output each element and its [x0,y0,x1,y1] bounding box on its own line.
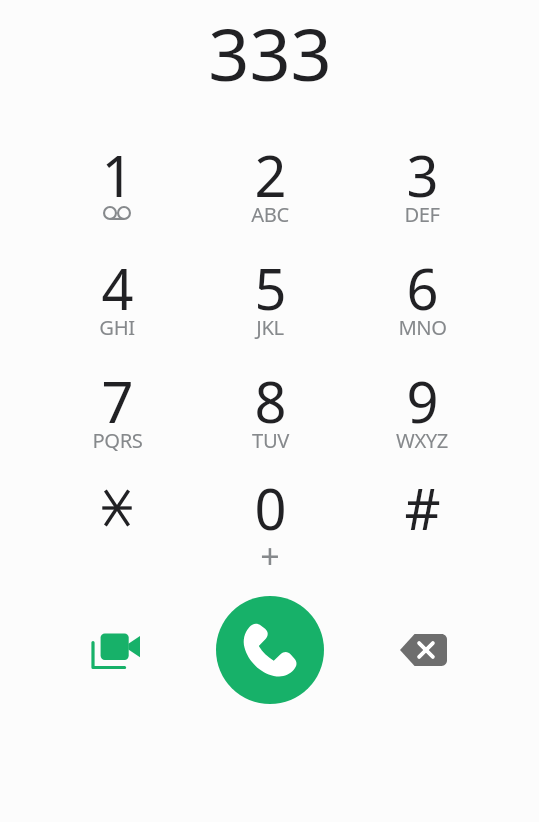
button[interactable]: 7 [55,361,179,465]
staticText: MNO [398,313,447,341]
staticText: DEF [404,200,440,228]
button[interactable]: 8 [208,361,332,465]
button[interactable]: 0 [208,468,332,572]
staticText: TUV [252,426,289,454]
button[interactable]: 4 [55,248,179,352]
button[interactable]: 2 [208,135,332,239]
button[interactable]: 6 [360,248,484,352]
staticText: 333 [208,4,332,102]
staticText: 6 [406,250,439,326]
button[interactable] [55,468,179,572]
button[interactable]: 5 [208,248,332,352]
staticText: 1 [101,137,134,213]
staticText: 0 [254,470,287,546]
button[interactable]: 3 [360,135,484,239]
button[interactable]: Video call [83,618,149,684]
staticText: 3 [406,137,439,213]
staticText: 7 [101,363,134,439]
staticText: PQRS [92,426,143,454]
staticText: # [404,470,441,546]
staticText: 4 [101,250,134,326]
staticText: ABC [251,200,289,228]
staticText: JKL [256,313,284,341]
button[interactable]: Call [216,596,324,704]
staticText: 9 [406,363,439,439]
staticText: GHI [99,313,135,341]
button[interactable]: 9 [360,361,484,465]
button[interactable]: 1 [55,135,179,239]
staticText: + [260,533,280,579]
button[interactable]: Backspace [390,617,456,683]
button[interactable]: # [360,468,484,572]
staticText: WXYZ [396,426,448,454]
staticText: 8 [254,363,287,439]
staticText: 5 [254,250,287,326]
staticText: 2 [254,137,287,213]
